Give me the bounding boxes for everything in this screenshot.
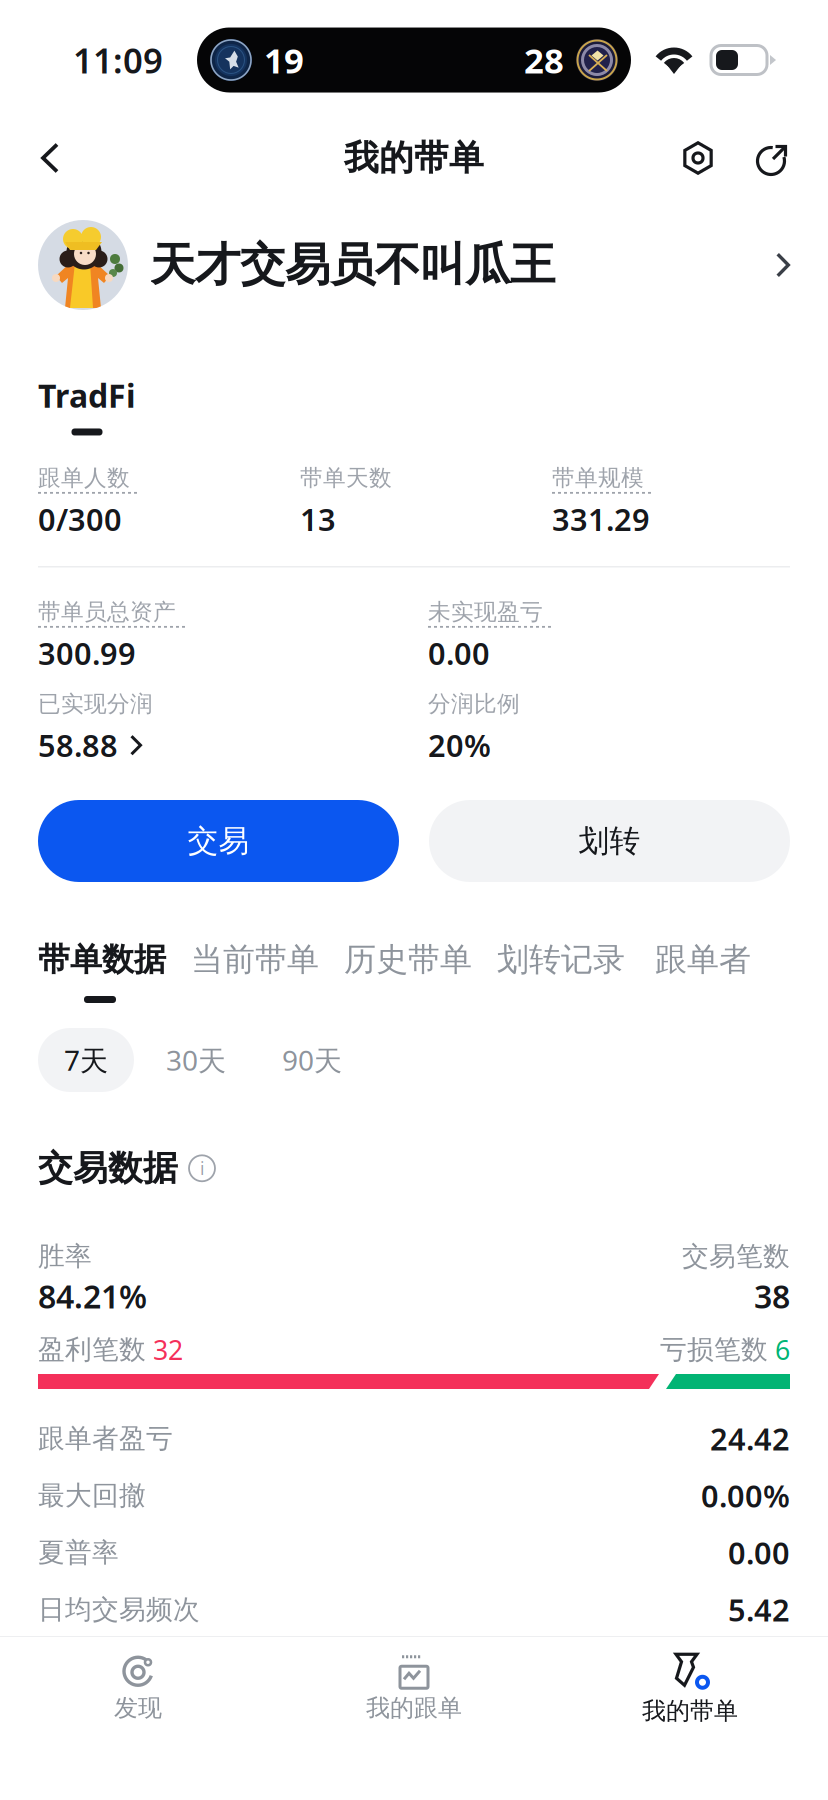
button[interactable]: 30天 [142,1028,250,1092]
staticText: 6 [768,1332,790,1367]
staticText: 32 [146,1332,183,1367]
staticText: 28 [524,37,564,83]
button[interactable]: 我的带单 [552,1639,828,1739]
button[interactable]: 交易 [38,800,399,882]
staticText: 7天 [64,1041,108,1079]
staticText: 交易数据 [38,1147,178,1190]
staticText: 19 [264,37,304,83]
staticText: 带单数据 [38,940,166,979]
staticText: 90天 [282,1041,342,1079]
staticText: 交易笔数 [682,1240,790,1273]
staticText: 0.00 [728,1532,790,1573]
staticText: 最大回撤 [38,1479,146,1512]
button[interactable]: 7天 [38,1028,134,1092]
staticText: 11:09 [73,37,163,83]
staticText: 夏普率 [38,1536,119,1569]
button[interactable]: 划转记录 [497,940,625,979]
staticText: 划转 [578,822,640,860]
staticText: 24.42 [710,1418,790,1459]
button[interactable]: 发现 [0,1639,276,1739]
staticText: 5.42 [728,1589,790,1630]
staticText: 58.88 [38,725,118,765]
staticText: 交易 [187,822,249,860]
button[interactable]: 天才交易员不叫瓜王 [0,204,828,326]
button[interactable]: 我的跟单 [276,1639,552,1739]
staticText: 当前带单 [191,940,319,979]
staticText: 跟单者盈亏 [38,1422,173,1455]
staticText: 天才交易员不叫瓜王 [150,237,555,293]
button[interactable]: 历史带单 [344,940,472,979]
staticText: 带单天数 [300,464,392,492]
staticText: 我的带单 [344,137,484,179]
button[interactable]: 当前带单 [191,940,319,979]
button[interactable]: 带单数据 [38,940,166,979]
staticText: 我的带单 [642,1696,738,1726]
button[interactable]: 90天 [258,1028,366,1092]
button[interactable]: Share [736,114,808,202]
staticText: 发现 [114,1693,162,1723]
button[interactable]: Settings [660,114,736,202]
staticText: 盈利笔数 [38,1333,146,1366]
staticText: 331.29 [552,499,650,539]
staticText: 13 [300,499,336,539]
staticText: 历史带单 [344,940,472,979]
staticText: 0/300 [38,499,122,539]
staticText: 我的跟单 [366,1693,462,1723]
staticText: TradFi [38,374,136,416]
staticText: 20% [428,725,491,765]
button[interactable]: 跟单者 [655,940,751,979]
staticText: 300.99 [38,633,136,673]
staticText: 划转记录 [497,940,625,979]
staticText: 带单员总资产 [38,598,176,626]
staticText: 84.21% [38,1275,147,1317]
staticText: 0.00 [428,633,490,673]
staticText: 跟单人数 [38,464,130,492]
button[interactable]: Back [14,114,86,202]
staticText: 带单规模 [552,464,644,492]
staticText: 已实现分润 [38,690,153,718]
staticText: 亏损笔数 [660,1333,768,1366]
staticText: 胜率 [38,1240,92,1273]
staticText: 日均交易频次 [38,1593,200,1626]
staticText: 38 [754,1275,790,1317]
button[interactable]: 划转 [429,800,790,882]
staticText: 未实现盈亏 [428,598,543,626]
staticText: 跟单者 [655,940,751,979]
staticText: i [200,1157,204,1180]
staticText: 30天 [166,1041,226,1079]
staticText: 分润比例 [428,690,520,718]
staticText: 0.00% [701,1475,790,1516]
